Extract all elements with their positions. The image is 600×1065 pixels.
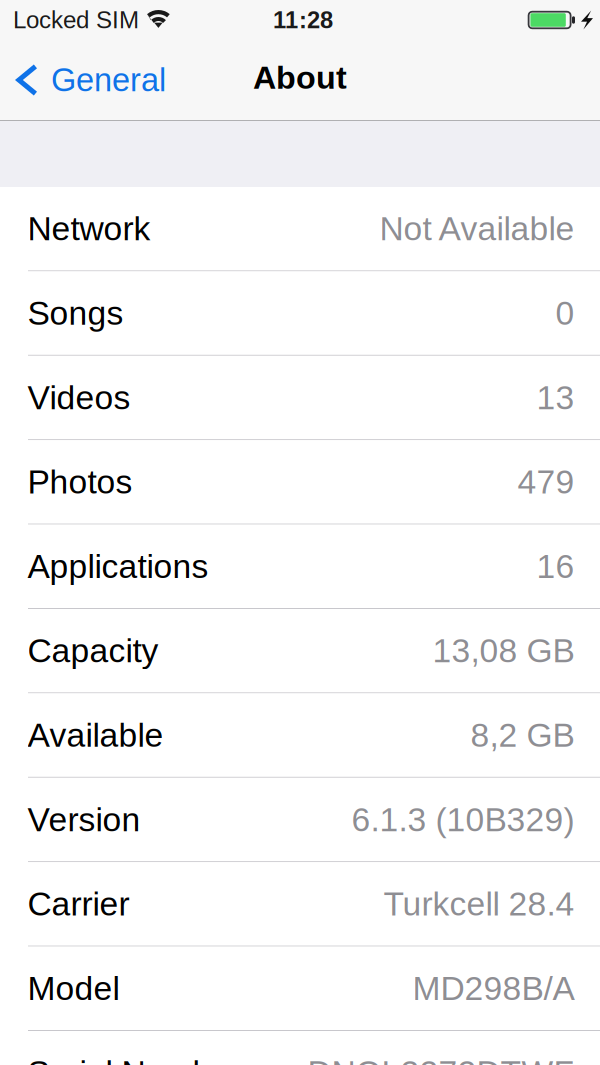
button[interactable]: Available: [0, 693, 600, 778]
staticText: Serial Number: [27, 1054, 241, 1065]
staticText: Photos: [27, 463, 132, 501]
staticText: Carrier: [27, 885, 129, 923]
button[interactable]: Capacity: [0, 609, 600, 693]
staticText: Capacity: [27, 632, 158, 669]
staticText: 13: [536, 379, 574, 416]
staticText: 8,2 GB: [470, 716, 574, 754]
staticText: Videos: [27, 379, 130, 416]
staticText: Songs: [27, 294, 123, 332]
button[interactable]: Model: [0, 947, 600, 1031]
button[interactable]: Carrier: [0, 862, 600, 947]
staticText: Version: [27, 801, 140, 838]
staticText: 6.1.3 (10B329): [351, 801, 574, 838]
staticText: MD298B/A: [412, 969, 574, 1007]
staticText: Network: [27, 210, 150, 247]
staticText: Model: [27, 969, 119, 1007]
button[interactable]: Network: [0, 187, 600, 271]
staticText: Not Available: [379, 210, 574, 247]
staticText: 479: [517, 463, 574, 501]
staticText: General: [51, 62, 166, 98]
staticText: 16: [536, 547, 574, 585]
staticText: 0: [555, 294, 574, 332]
button[interactable]: Version: [0, 778, 600, 862]
staticText: Locked SIM: [13, 6, 139, 33]
staticText: 11:28: [273, 7, 333, 33]
staticText: Applications: [27, 547, 208, 585]
staticText: 13,08 GB: [432, 632, 574, 669]
button[interactable]: Photos: [0, 440, 600, 525]
staticText: Available: [27, 716, 163, 754]
button[interactable]: Videos: [0, 356, 600, 440]
staticText: About: [253, 59, 347, 95]
button[interactable]: Back to General: [0, 40, 180, 120]
button[interactable]: Applications: [0, 525, 600, 609]
button[interactable]: Songs: [0, 271, 600, 356]
button[interactable]: Serial Number: [0, 1031, 600, 1065]
staticText: DNQL2272DTWF: [307, 1054, 574, 1065]
staticText: Turkcell 28.4: [383, 885, 574, 923]
